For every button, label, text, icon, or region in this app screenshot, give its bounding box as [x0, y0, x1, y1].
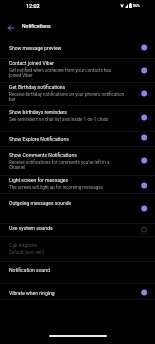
button[interactable]: Show message preview	[0, 40, 155, 59]
staticText: 86%	[133, 4, 140, 8]
button[interactable]: Outgoing messages sounds	[0, 194, 155, 224]
button[interactable]: Turn setting off	[134, 203, 152, 214]
staticText: Default (woo yeh)	[9, 250, 45, 255]
staticText: Get notified when someone from your cont…	[9, 68, 112, 73]
button[interactable]: Show Explore Notifications	[0, 132, 155, 147]
button[interactable]: Turn setting off	[134, 42, 152, 53]
staticText: Show birthdays reminders	[9, 109, 67, 115]
button[interactable]: Call ringtone	[0, 237, 155, 262]
button[interactable]: Turn setting on	[134, 224, 152, 235]
button[interactable]: Turn setting off	[134, 180, 152, 191]
staticText: Outgoing messages sounds	[9, 200, 72, 206]
button[interactable]: Turn setting off	[134, 287, 152, 298]
staticText: See reminders on chat list and inside 1-…	[9, 117, 109, 122]
button[interactable]: Get Birthday notifications	[0, 83, 155, 106]
staticText: Notifications	[22, 23, 51, 29]
button[interactable]: Vibrate when ringing	[0, 284, 155, 300]
button[interactable]: Back	[2, 19, 19, 36]
staticText: Call ringtone	[9, 242, 37, 248]
staticText: Channel	[9, 165, 26, 170]
button[interactable]: Show birthdays reminders	[0, 106, 155, 132]
button[interactable]: Show Comments Notifications	[0, 147, 155, 176]
staticText: Use system sounds	[9, 225, 53, 231]
button[interactable]: Contact joined Viber	[0, 59, 155, 83]
staticText: Receive birthday notifications on your p…	[9, 92, 124, 97]
staticText: Contact joined Viber	[9, 60, 55, 66]
button[interactable]: Light screen for messages	[0, 176, 155, 194]
button[interactable]: Turn setting off	[134, 112, 152, 123]
staticText: Receive notifications for comments you'v…	[9, 160, 110, 165]
button[interactable]: Turn setting off	[134, 155, 152, 166]
staticText: Show Comments Notifications	[9, 152, 77, 158]
staticText: Vibrate when ringing	[9, 290, 55, 296]
staticText: bar	[9, 97, 16, 102]
button[interactable]: Turn setting off	[134, 65, 152, 76]
staticText: 12:02	[26, 3, 40, 9]
staticText: Show Explore Notifications	[9, 136, 69, 142]
staticText: Show message preview	[9, 45, 62, 51]
button[interactable]: Use system sounds	[0, 224, 155, 237]
button[interactable]: Turn setting off	[134, 132, 152, 143]
staticText: joined Viber	[9, 73, 33, 78]
button[interactable]: Turn setting off	[134, 88, 152, 99]
button[interactable]: Notification sound	[0, 262, 155, 284]
staticText: Notification sound	[9, 267, 50, 273]
staticText: Light screen for messages	[9, 177, 68, 183]
staticText: Get Birthday notifications	[9, 84, 66, 90]
staticText: The screen will light up for incoming me…	[9, 185, 103, 190]
